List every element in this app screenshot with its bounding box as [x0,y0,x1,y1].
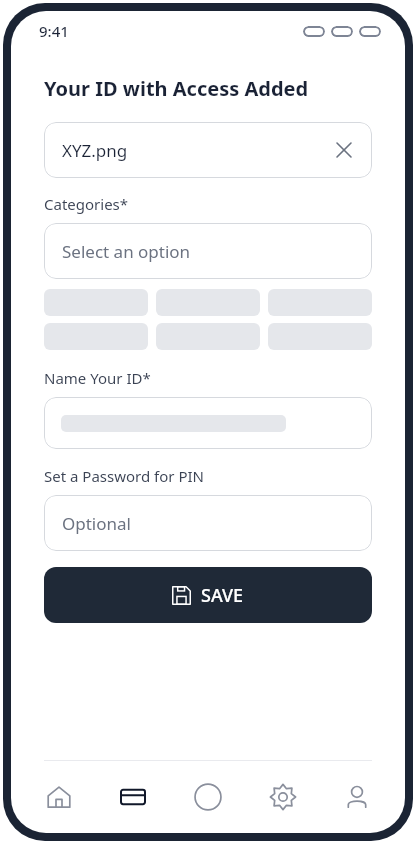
staticText: Your ID with Access Added [44,75,309,102]
button[interactable] [44,397,372,449]
staticText: Categories* [44,194,129,214]
staticText: Select an option [62,240,191,263]
button[interactable]: Remove file [330,136,358,164]
staticText: XYZ.png [62,139,128,162]
button[interactable]: Cards [106,770,160,824]
button[interactable]: Settings [256,770,310,824]
staticText: Set a Password for PIN [44,466,204,486]
button[interactable]: XYZ.png [44,122,372,178]
staticText: Name Your ID* [44,368,151,388]
button[interactable]: Scan [181,770,235,824]
button[interactable]: Select an option [44,223,372,279]
button[interactable]: SAVE [44,567,372,623]
staticText: 9:41 [39,21,69,41]
staticText: SAVE [201,583,244,608]
button[interactable]: Home [32,770,86,824]
staticText: Optional [62,512,131,535]
button[interactable]: Optional [44,495,372,551]
button[interactable]: Profile [330,770,384,824]
